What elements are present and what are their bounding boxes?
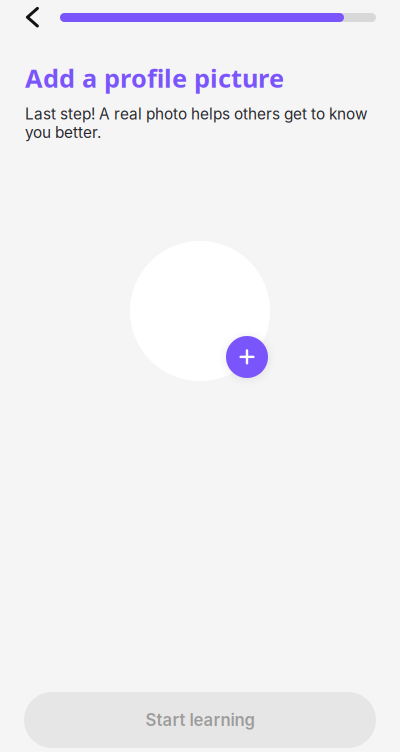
staticText: Start learning bbox=[145, 710, 254, 730]
staticText: Add a profile picture bbox=[25, 61, 284, 95]
button[interactable]: Back bbox=[26, 0, 64, 34]
button[interactable]: Start learning bbox=[24, 692, 376, 748]
button[interactable]: Add photo bbox=[226, 336, 268, 378]
staticText: Last step! A real photo helps others get… bbox=[25, 105, 368, 142]
